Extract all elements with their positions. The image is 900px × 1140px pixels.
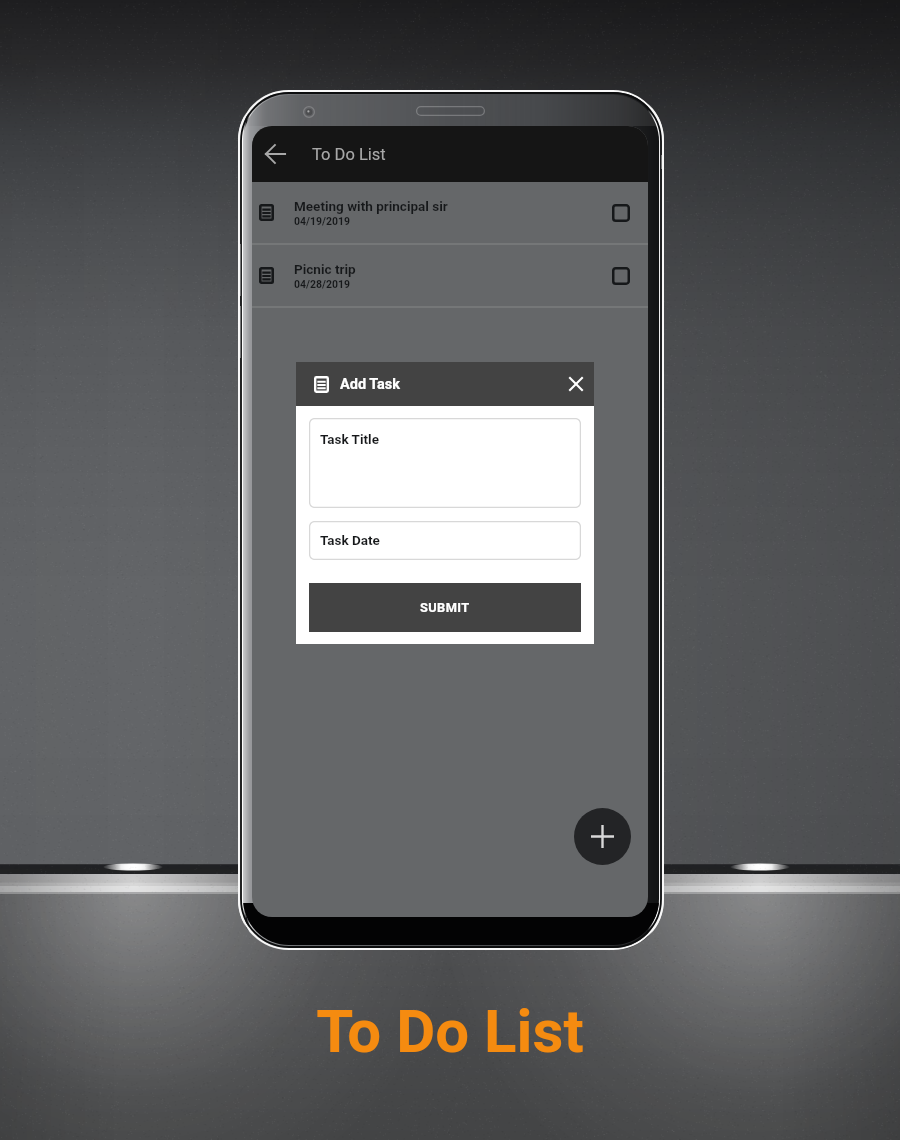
button[interactable]: Task Date: [309, 521, 581, 560]
button[interactable]: Back: [253, 132, 297, 176]
staticText: Add Task: [340, 376, 401, 393]
button[interactable]: Toggle done: [601, 193, 641, 233]
button[interactable]: Task Title: [309, 418, 581, 508]
staticText: 04/19/2019: [294, 215, 351, 227]
button[interactable]: SUBMIT: [309, 583, 581, 632]
staticText: To Do List: [316, 996, 584, 1066]
staticText: 04/28/2019: [294, 278, 351, 290]
staticText: Task Title: [320, 431, 379, 447]
staticText: Task Date: [320, 532, 380, 548]
button[interactable]: Picnic trip: [252, 245, 648, 306]
staticText: Picnic trip: [294, 261, 356, 277]
button[interactable]: Toggle done: [601, 256, 641, 296]
button[interactable]: Add task: [574, 808, 631, 865]
staticText: Meeting with principal sir: [294, 198, 448, 214]
button[interactable]: Meeting with principal sir: [252, 182, 648, 243]
button[interactable]: Close: [560, 368, 592, 400]
staticText: SUBMIT: [420, 600, 470, 615]
staticText: To Do List: [312, 145, 386, 164]
